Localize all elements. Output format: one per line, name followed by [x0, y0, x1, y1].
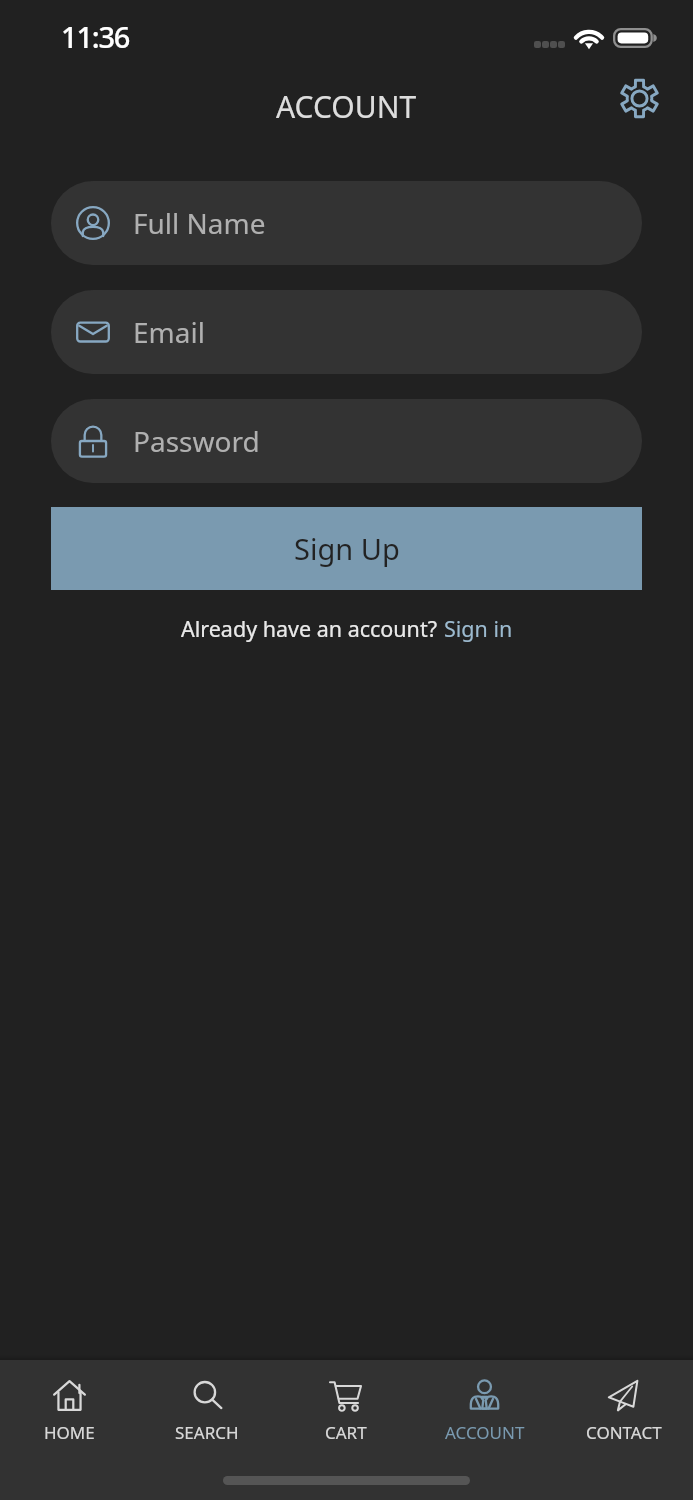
staticText: Password: [133, 422, 260, 460]
staticText: Already have an account?: [181, 614, 438, 643]
staticText: SEARCH: [175, 1421, 239, 1444]
staticText: HOME: [44, 1421, 95, 1444]
button[interactable]: Sign in: [444, 614, 513, 643]
staticText: Sign Up: [294, 529, 400, 568]
button[interactable]: Sign Up: [51, 507, 642, 590]
button[interactable]: Password: [51, 399, 642, 483]
staticText: Full Name: [133, 204, 266, 242]
staticText: CONTACT: [586, 1421, 662, 1444]
button[interactable]: SEARCH: [138, 1370, 276, 1450]
staticText: ACCOUNT: [445, 1421, 525, 1444]
button[interactable]: Settings: [612, 71, 666, 125]
staticText: Sign in: [444, 614, 513, 643]
staticText: CART: [325, 1421, 367, 1444]
button[interactable]: Full Name: [51, 181, 642, 265]
button[interactable]: CART: [276, 1370, 415, 1450]
staticText: Email: [133, 313, 205, 351]
staticText: ACCOUNT: [276, 86, 417, 127]
button[interactable]: CONTACT: [554, 1370, 693, 1450]
button[interactable]: Email: [51, 290, 642, 374]
button[interactable]: HOME: [0, 1370, 138, 1450]
button[interactable]: ACCOUNT: [415, 1370, 554, 1450]
staticText: 11:36: [61, 17, 130, 56]
